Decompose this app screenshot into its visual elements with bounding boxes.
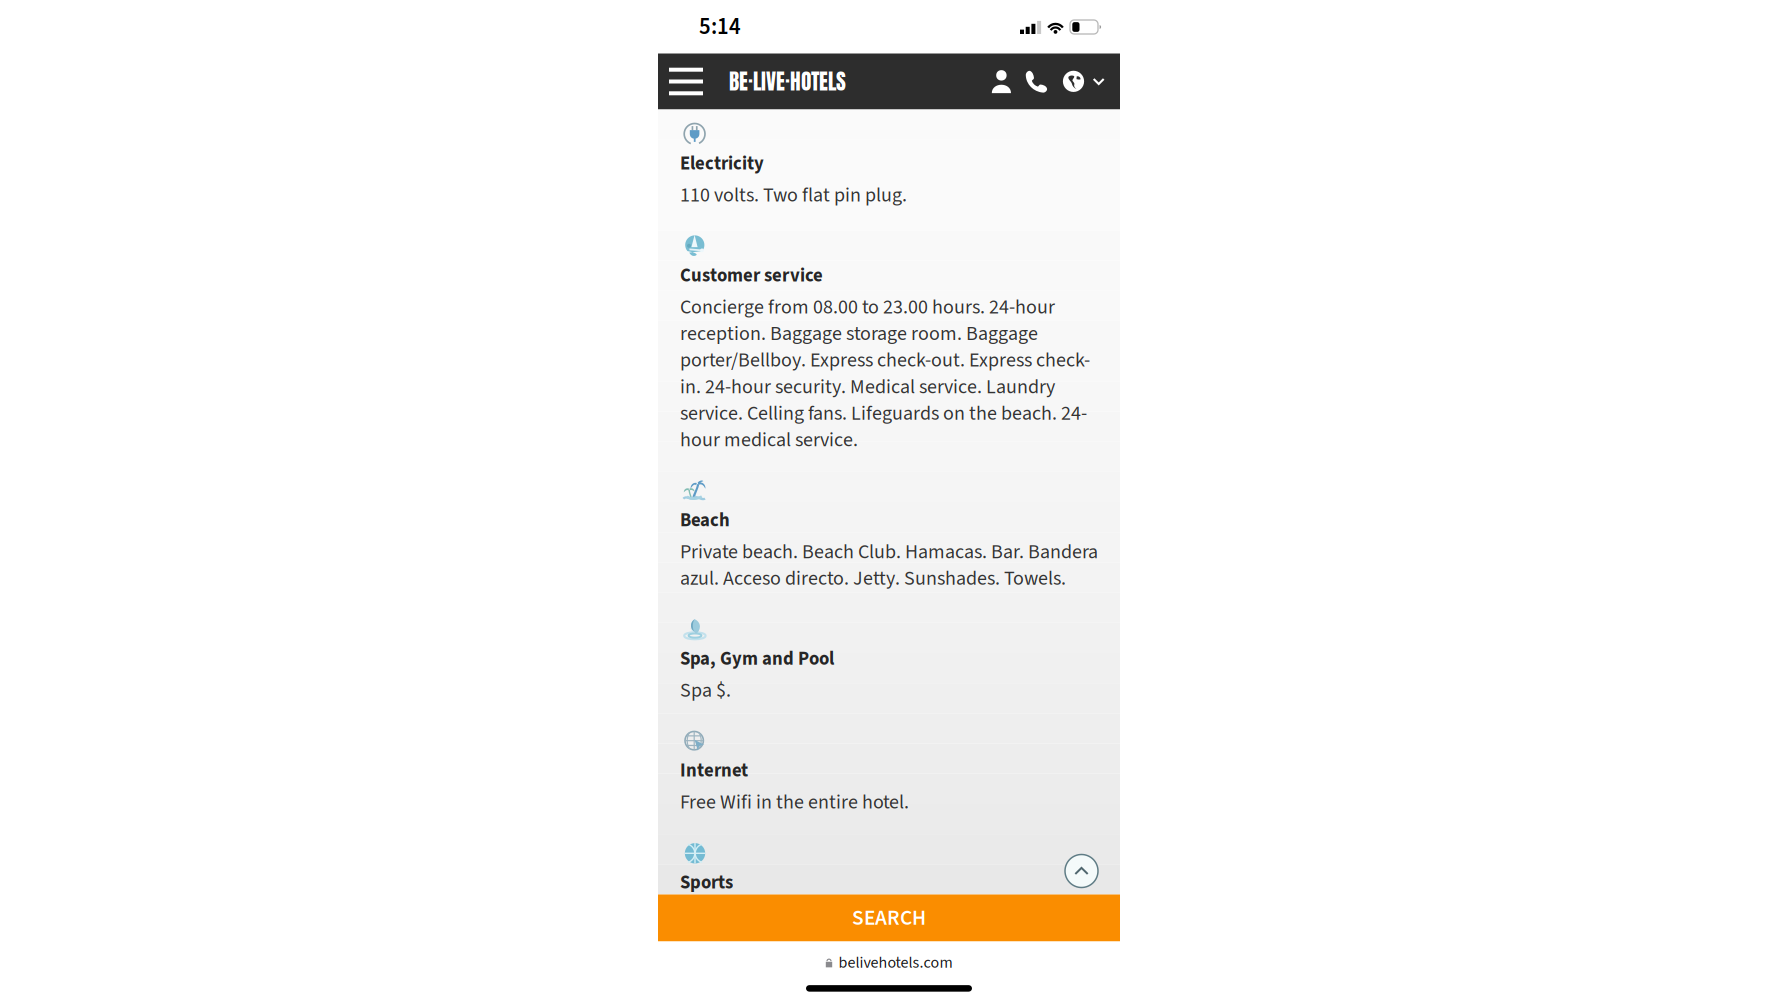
staticText: Customer service xyxy=(680,262,823,289)
staticText: Electricity xyxy=(680,150,764,177)
staticText: BE·LIVE·HOTELS xyxy=(729,65,846,97)
button[interactable]: Call us xyxy=(1022,54,1055,109)
button[interactable]: Change language xyxy=(1055,55,1120,108)
staticText: 110 volts. Two flat pin plug. xyxy=(680,181,907,210)
staticText: Spa $. xyxy=(680,676,731,705)
button[interactable]: SEARCH xyxy=(658,894,1120,941)
button[interactable]: BE·LIVE·HOTELS xyxy=(714,48,852,114)
staticText: Free Wifi in the entire hotel. xyxy=(680,788,909,816)
staticText: Beach xyxy=(680,507,730,534)
staticText: belivehotels.com xyxy=(839,951,953,974)
staticText: Spa, Gym and Pool xyxy=(680,646,834,672)
button[interactable]: Open menu xyxy=(658,54,714,109)
staticText: Sports xyxy=(680,869,733,896)
staticText: SEARCH xyxy=(852,903,926,933)
button[interactable]: Scroll to top xyxy=(1065,854,1098,887)
button[interactable]: belivehotels.com xyxy=(811,948,967,977)
staticText: 5:14 xyxy=(699,11,741,43)
staticText: Private beach. Beach Club. Hamacas. Bar.… xyxy=(680,538,1098,593)
staticText: Internet xyxy=(680,757,748,784)
staticText: Concierge from 08.00 to 23.00 hours. 24-… xyxy=(680,293,1090,454)
button[interactable]: My account xyxy=(986,54,1022,109)
